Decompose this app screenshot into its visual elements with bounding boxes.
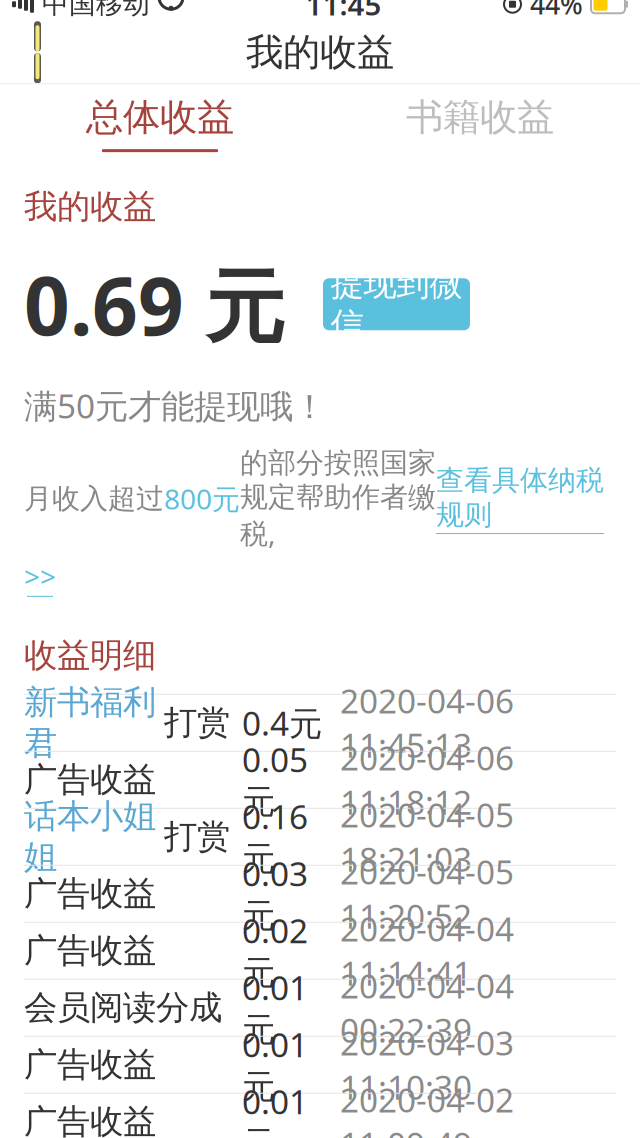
button[interactable]: 广告收益 bbox=[0, 1094, 640, 1138]
staticText: 总体收益 bbox=[86, 94, 234, 140]
staticText: 2020-04-06 11:18:12 bbox=[340, 735, 514, 824]
staticText: 2020-04-04 11:14:41 bbox=[340, 906, 514, 995]
button[interactable]: 返回 bbox=[0, 21, 64, 83]
staticText: 打赏 bbox=[164, 816, 230, 857]
button[interactable]: 会员阅读分成 bbox=[0, 980, 640, 1036]
staticText: 0.02元 bbox=[242, 908, 308, 993]
staticText: >> bbox=[24, 558, 56, 595]
staticText: 打赏 bbox=[164, 702, 230, 743]
button[interactable]: 广告收益 bbox=[0, 752, 640, 808]
button[interactable]: 广告收益 bbox=[0, 866, 640, 922]
staticText: 2020-04-05 18:21:03 bbox=[340, 792, 514, 881]
staticText: 提现到微信 bbox=[330, 263, 462, 345]
staticText: 2020-04-02 11:09:49 bbox=[340, 1077, 514, 1138]
button[interactable]: 广告收益 bbox=[0, 1037, 640, 1093]
staticText: 广告收益 bbox=[24, 930, 156, 971]
staticText: 广告收益 bbox=[24, 1101, 156, 1138]
staticText: 800元 bbox=[164, 480, 240, 517]
staticText: 2020-04-04 00:22:39 bbox=[340, 963, 514, 1052]
staticText: 查看具体纳税规则 bbox=[436, 463, 604, 532]
staticText: 书籍收益 bbox=[406, 94, 554, 140]
staticText: 会员阅读分成 bbox=[24, 987, 222, 1028]
staticText: 0.03元 bbox=[242, 851, 308, 936]
staticText: 中国移动 bbox=[42, 0, 150, 21]
button[interactable]: 总体收益 bbox=[0, 84, 320, 162]
button[interactable]: 书籍收益 bbox=[320, 84, 640, 162]
button[interactable]: 广告收益 bbox=[0, 923, 640, 979]
button[interactable]: 新书福利君 bbox=[0, 695, 640, 751]
staticText: 新书福利君 bbox=[24, 682, 156, 764]
staticText: 44% bbox=[530, 0, 583, 22]
staticText: 0.05元 bbox=[242, 737, 308, 822]
staticText: 广告收益 bbox=[24, 1044, 156, 1085]
staticText: 我的收益 bbox=[24, 186, 156, 227]
staticText: 2020-04-06 11:45:13 bbox=[340, 678, 514, 767]
staticText: 0.01元 bbox=[242, 1022, 308, 1107]
button[interactable]: 话本小姐姐 bbox=[0, 809, 640, 865]
button[interactable]: >> bbox=[24, 558, 56, 597]
staticText: 话本小姐姐 bbox=[24, 796, 156, 878]
staticText: 广告收益 bbox=[24, 759, 156, 800]
staticText: 0.01元 bbox=[242, 965, 308, 1050]
staticText: 我的收益 bbox=[246, 29, 394, 75]
staticText: 满50元才能提现哦！ bbox=[24, 383, 326, 428]
staticText: 11:45 bbox=[305, 0, 381, 24]
staticText: 0.4元 bbox=[242, 701, 322, 745]
staticText: 2020-04-03 11:10:30 bbox=[340, 1020, 514, 1109]
staticText: 0.69 元 bbox=[24, 251, 285, 357]
staticText: 0.16元 bbox=[242, 794, 308, 879]
staticText: 收益明细 bbox=[24, 635, 156, 676]
staticText: 的部分按照国家规定帮助作者缴税, bbox=[240, 446, 436, 552]
button[interactable]: 提现到微信 bbox=[323, 278, 470, 330]
staticText: 2020-04-05 11:20:52 bbox=[340, 849, 514, 938]
button[interactable]: 查看具体纳税规则 bbox=[436, 463, 604, 534]
staticText: 月收入超过 bbox=[24, 481, 164, 516]
staticText: 0.01元 bbox=[242, 1079, 308, 1138]
staticText: 广告收益 bbox=[24, 873, 156, 914]
